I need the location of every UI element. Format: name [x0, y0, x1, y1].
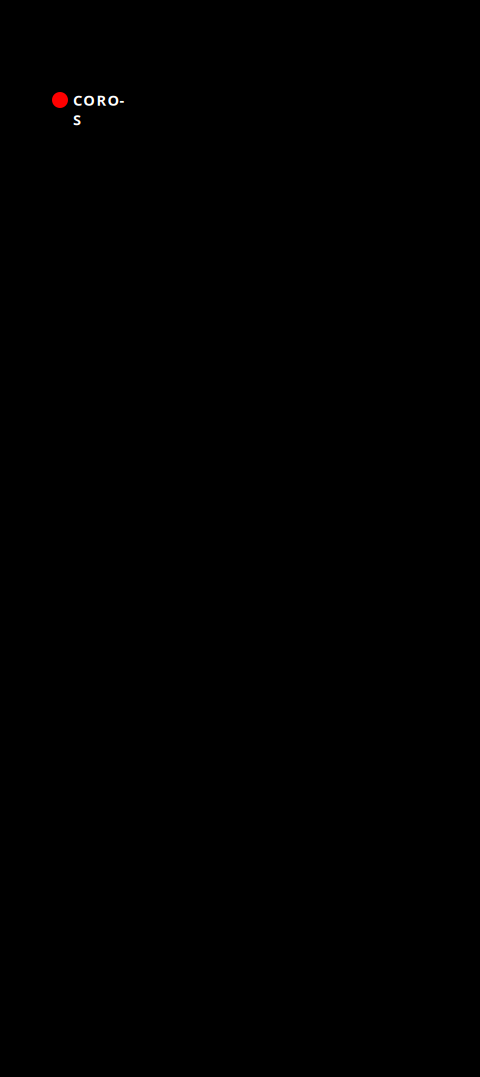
staticText: COROS: [73, 90, 129, 110]
